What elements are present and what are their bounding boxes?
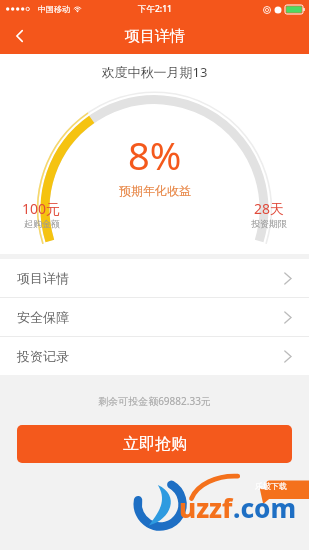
staticText: 项目详情 bbox=[125, 27, 185, 46]
staticText: 乐坡下载 bbox=[255, 481, 287, 491]
staticText: 起购金额 bbox=[24, 218, 60, 229]
staticText: 投资期限 bbox=[251, 218, 287, 229]
staticText: 下午2:11 bbox=[138, 3, 172, 15]
staticText: 28天 bbox=[254, 199, 285, 218]
staticText: 欢度中秋一月期13 bbox=[0, 63, 309, 81]
staticText: 8% bbox=[128, 129, 182, 181]
button[interactable]: 立即抢购 bbox=[17, 425, 292, 463]
button[interactable]: Back bbox=[0, 18, 40, 54]
staticText: 项目详情 bbox=[17, 270, 69, 286]
staticText: 剩余可投金额69882.33元 bbox=[0, 394, 309, 408]
button[interactable]: 项目详情 bbox=[0, 259, 309, 297]
staticText: uzzf bbox=[179, 490, 233, 525]
staticText: 中国移动 bbox=[38, 4, 70, 14]
button[interactable]: 投资记录 bbox=[0, 337, 309, 375]
staticText: 100元 bbox=[22, 199, 61, 218]
staticText: 投资记录 bbox=[17, 348, 69, 364]
staticText: 安全保障 bbox=[17, 309, 69, 325]
staticText: 立即抢购 bbox=[123, 434, 187, 454]
staticText: 预期年化收益 bbox=[119, 183, 191, 198]
button[interactable]: 安全保障 bbox=[0, 298, 309, 336]
staticText: .com bbox=[233, 490, 297, 525]
